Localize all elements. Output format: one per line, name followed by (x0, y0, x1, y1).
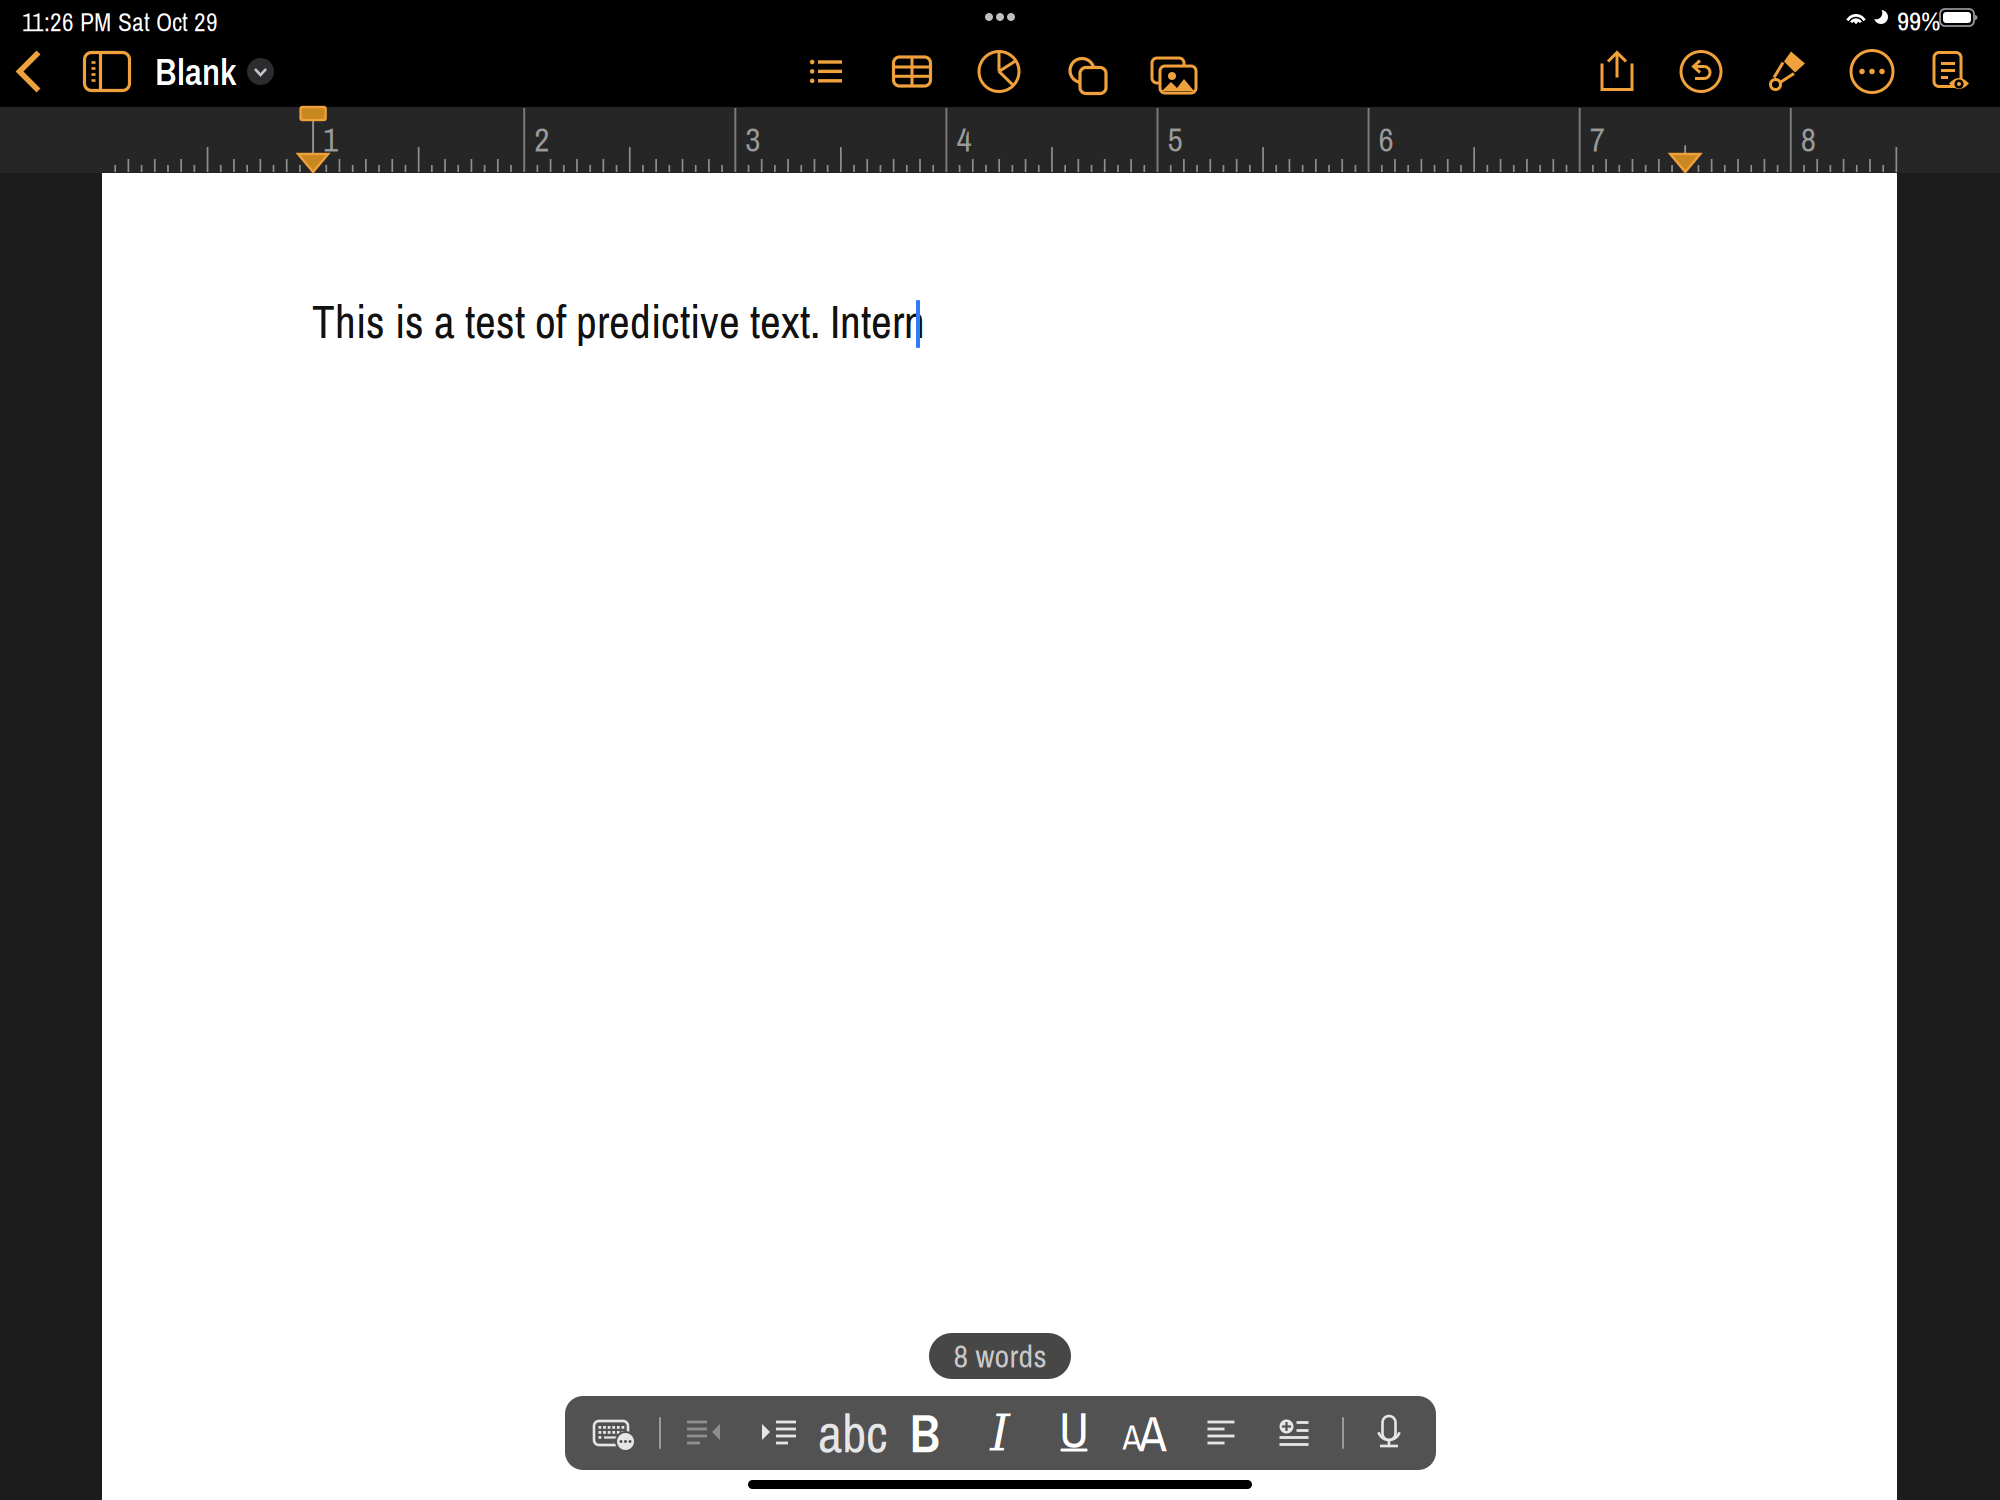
staticText: 3 (745, 117, 760, 162)
button[interactable]: Chart (963, 36, 1035, 107)
button[interactable]: Underline (1039, 1396, 1109, 1470)
button[interactable]: Media (1134, 36, 1206, 107)
button[interactable]: Dictate (1354, 1396, 1424, 1470)
staticText: 8 words (953, 1334, 1046, 1377)
button[interactable]: Back (0, 36, 65, 107)
staticText: 99% (1897, 3, 1940, 39)
staticText: 1 (323, 117, 338, 162)
button[interactable]: Bold (890, 1396, 960, 1470)
button[interactable]: Lists (790, 36, 862, 107)
button[interactable]: Text style (818, 1396, 888, 1470)
staticText: 8 (1801, 117, 1816, 162)
staticText: Sat Oct 29 (118, 5, 218, 39)
button[interactable]: Insert (1259, 1396, 1329, 1470)
button[interactable]: Increase indent (744, 1396, 814, 1470)
staticText: I (990, 1403, 1010, 1462)
button[interactable]: Document options (1915, 36, 1987, 107)
staticText: A (1139, 1399, 1167, 1467)
staticText: 5 (1167, 117, 1182, 162)
staticText: Blank (155, 46, 236, 97)
staticText: A (1122, 1414, 1141, 1460)
staticText: 6 (1379, 117, 1394, 162)
staticText: 4 (956, 117, 971, 162)
button[interactable]: Keyboard (576, 1396, 646, 1470)
button[interactable]: Font size (1112, 1396, 1182, 1470)
button[interactable]: Alignment (1186, 1396, 1256, 1470)
staticText: 11:26 PM (22, 5, 111, 39)
button[interactable]: Decrease indent (669, 1396, 739, 1470)
button[interactable]: Table (876, 36, 948, 107)
staticText: This is a test of predictive text. Inter… (312, 291, 925, 352)
staticText: U (1059, 1395, 1089, 1463)
button[interactable]: Shape (1047, 36, 1119, 107)
button[interactable]: Blank (155, 36, 274, 107)
button[interactable]: Italic (965, 1396, 1035, 1470)
staticText: 2 (534, 117, 549, 162)
button[interactable]: More (1836, 36, 1908, 107)
button[interactable]: Undo (1665, 36, 1737, 107)
staticText: abc (818, 1397, 888, 1469)
button[interactable]: Show sidebar (71, 36, 143, 107)
staticText: B (909, 1397, 940, 1469)
button[interactable]: Share (1581, 36, 1653, 107)
button[interactable]: Format (1751, 36, 1823, 107)
staticText: 7 (1590, 117, 1605, 162)
